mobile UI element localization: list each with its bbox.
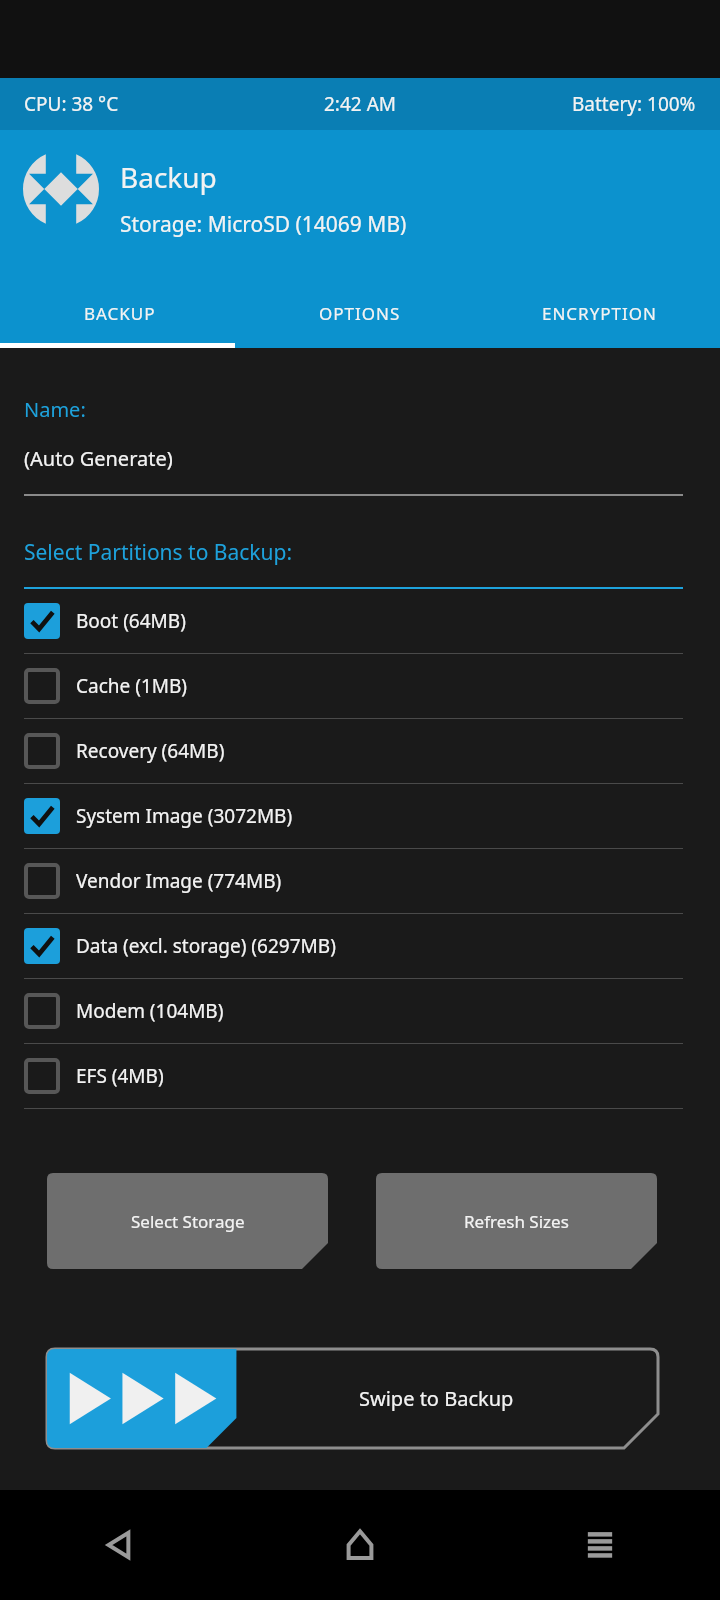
button[interactable]: Select Storage — [47, 1173, 328, 1269]
staticText: 2:42 AM — [324, 91, 397, 117]
staticText: (Auto Generate) — [24, 445, 173, 472]
staticText: Battery: 100% — [572, 91, 696, 117]
button[interactable]: OPTIONS — [240, 278, 480, 348]
button[interactable]: Home — [240, 1490, 480, 1600]
staticText: Modem (104MB) — [76, 998, 224, 1024]
staticText: Select Storage — [131, 1210, 245, 1233]
staticText: EFS (4MB) — [76, 1063, 164, 1089]
staticText: CPU: 38 °C — [24, 91, 119, 117]
staticText: Backup — [120, 158, 217, 196]
button[interactable]: Refresh Sizes — [376, 1173, 657, 1269]
staticText: Select Partitions to Backup: — [24, 538, 293, 567]
button[interactable]: Cache (1MB) — [0, 654, 720, 718]
staticText: Refresh Sizes — [464, 1210, 569, 1233]
staticText: OPTIONS — [319, 302, 401, 325]
staticText: ENCRYPTION — [542, 302, 658, 325]
staticText: Cache (1MB) — [76, 673, 188, 699]
button[interactable]: Recovery (64MB) — [0, 719, 720, 783]
button[interactable]: Data (excl. storage) (6297MB) — [0, 914, 720, 978]
button[interactable]: BACKUP — [0, 278, 240, 348]
staticText: System Image (3072MB) — [76, 803, 293, 829]
staticText: Name: — [24, 396, 86, 423]
button[interactable]: EFS (4MB) — [0, 1044, 720, 1108]
button[interactable]: Modem (104MB) — [0, 979, 720, 1043]
staticText: Recovery (64MB) — [76, 738, 225, 764]
staticText: Vendor Image (774MB) — [76, 868, 282, 894]
staticText: Data (excl. storage) (6297MB) — [76, 933, 336, 959]
button[interactable]: Vendor Image (774MB) — [0, 849, 720, 913]
staticText: Swipe to Backup — [359, 1385, 514, 1412]
button[interactable]: Swipe to Backup — [47, 1349, 658, 1448]
button[interactable]: Menu — [480, 1490, 720, 1600]
staticText: Storage: MicroSD (14069 MB) — [120, 210, 407, 239]
button[interactable]: Back — [0, 1490, 240, 1600]
button[interactable]: ENCRYPTION — [480, 278, 720, 348]
button[interactable]: System Image (3072MB) — [0, 784, 720, 848]
staticText: Boot (64MB) — [76, 608, 186, 634]
staticText: BACKUP — [84, 302, 156, 325]
button[interactable]: Boot (64MB) — [0, 589, 720, 653]
